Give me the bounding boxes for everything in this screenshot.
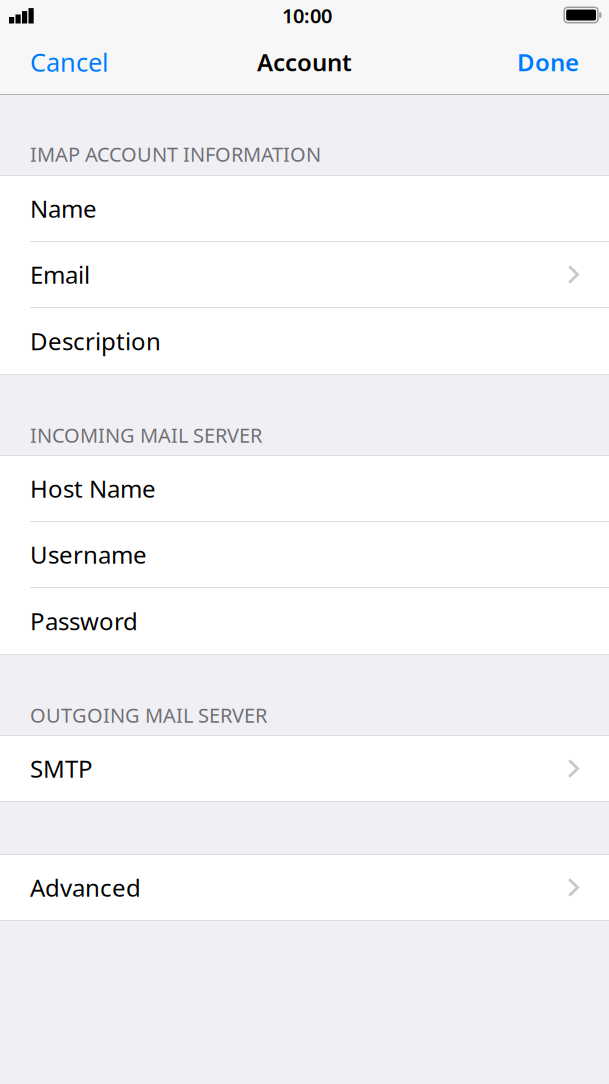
staticText: Email — [30, 259, 90, 290]
button[interactable]: Password — [0, 588, 609, 654]
button[interactable]: Host Name — [0, 456, 609, 521]
staticText: Account — [257, 46, 352, 78]
staticText: 10:00 — [282, 2, 332, 29]
staticText: Advanced — [30, 872, 141, 903]
staticText: Description — [30, 325, 161, 357]
button[interactable]: Advanced — [0, 855, 609, 920]
staticText: Done — [517, 46, 579, 78]
button[interactable]: Name — [0, 176, 609, 241]
staticText: SMTP — [30, 753, 93, 784]
button[interactable]: Done — [507, 35, 589, 89]
button[interactable]: Description — [0, 308, 609, 374]
staticText: Host Name — [30, 473, 156, 504]
button[interactable]: Username — [0, 522, 609, 587]
button[interactable]: Email — [0, 242, 609, 307]
staticText: Cancel — [30, 45, 109, 79]
staticText: OUTGOING MAIL SERVER — [30, 702, 267, 728]
button[interactable]: Cancel — [20, 34, 119, 90]
button[interactable]: SMTP — [0, 736, 609, 801]
staticText: IMAP ACCOUNT INFORMATION — [30, 141, 321, 167]
staticText: Username — [30, 539, 147, 570]
staticText: INCOMING MAIL SERVER — [30, 422, 262, 448]
staticText: Password — [30, 605, 138, 637]
staticText: Name — [30, 193, 97, 224]
